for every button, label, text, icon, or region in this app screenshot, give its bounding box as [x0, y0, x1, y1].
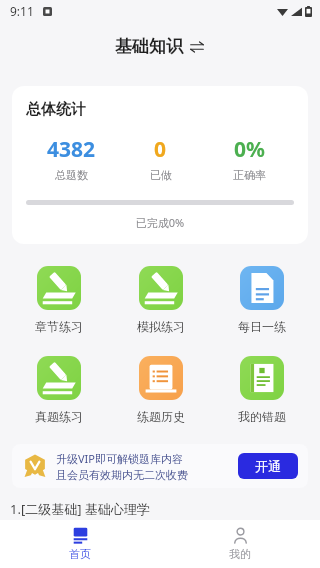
- staticText: 0: [154, 135, 167, 164]
- button[interactable]: 我的错题: [211, 356, 312, 424]
- staticText: 首页: [69, 547, 91, 561]
- staticText: 我的错题: [238, 409, 286, 424]
- button[interactable]: 总体统计: [12, 86, 308, 244]
- staticText: 正确率: [233, 168, 266, 182]
- staticText: 模拟练习: [137, 319, 185, 334]
- staticText: 每日一练: [238, 319, 286, 334]
- staticText: 开通: [255, 458, 281, 474]
- staticText: 章节练习: [35, 319, 83, 334]
- button[interactable]: 真题练习: [8, 356, 110, 424]
- staticText: 总体统计: [26, 100, 86, 119]
- button[interactable]: 练题历史: [110, 356, 211, 424]
- staticText: 基础知识: [115, 36, 183, 57]
- staticText: 总题数: [55, 168, 88, 182]
- button[interactable]: 首页: [0, 520, 160, 568]
- button[interactable]: 模拟练习: [110, 266, 211, 334]
- button[interactable]: 1.[二级基础] 基础心理学: [10, 500, 310, 518]
- staticText: 升级VIP即可解锁题库内容: [56, 451, 183, 466]
- staticText: 练题历史: [137, 409, 185, 424]
- staticText: 0%: [234, 135, 265, 164]
- staticText: 且会员有效期内无二次收费: [56, 468, 188, 482]
- staticText: 已做: [150, 168, 172, 182]
- button[interactable]: Switch subject: [189, 39, 205, 55]
- staticText: 已完成0%: [26, 215, 294, 230]
- button[interactable]: 升级VIP即可解锁题库内容: [12, 444, 308, 488]
- staticText: 我的: [229, 547, 251, 561]
- button[interactable]: 我的: [160, 520, 320, 568]
- staticText: 1.[二级基础] 基础心理学: [10, 500, 150, 518]
- button[interactable]: 开通: [238, 453, 298, 479]
- button[interactable]: 每日一练: [211, 266, 312, 334]
- staticText: 真题练习: [35, 409, 83, 424]
- button[interactable]: 章节练习: [8, 266, 110, 334]
- staticText: 9:11: [10, 3, 34, 19]
- staticText: 4382: [47, 135, 96, 164]
